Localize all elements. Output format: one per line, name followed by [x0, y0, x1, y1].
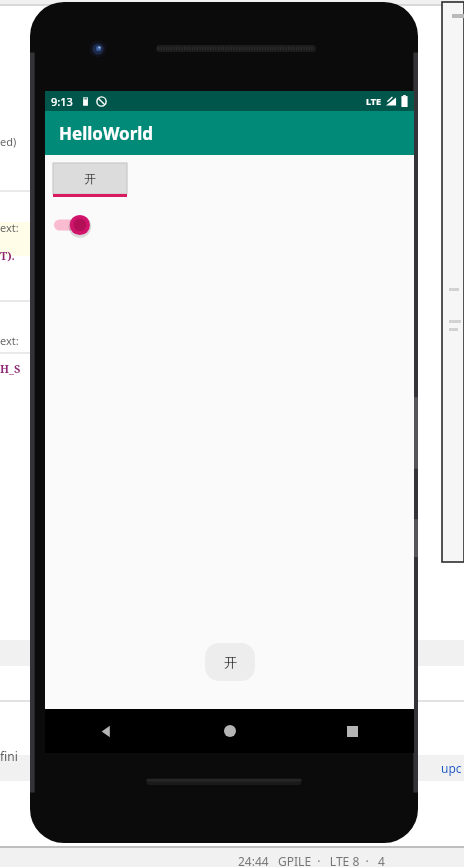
- staticText: fini: [0, 748, 18, 764]
- staticText: H_S: [0, 361, 21, 376]
- staticText: 开: [84, 171, 96, 186]
- staticText: HelloWorld: [59, 122, 154, 145]
- staticText: ed): [0, 134, 17, 149]
- button[interactable]: 开: [205, 643, 255, 681]
- staticText: LTE: [366, 95, 382, 107]
- staticText: ext:: [0, 220, 19, 235]
- staticText: upc: [441, 760, 462, 776]
- staticText: 9:13: [51, 94, 73, 109]
- staticText: T).: [0, 248, 15, 263]
- staticText: 24:44 GPILE · LTE 8 · 4: [238, 853, 385, 867]
- staticText: ext:: [0, 333, 19, 348]
- button[interactable]: Toggle switch: [53, 211, 99, 239]
- button[interactable]: Home: [168, 709, 291, 753]
- button[interactable]: Recent apps: [291, 709, 414, 753]
- button[interactable]: Back: [45, 709, 168, 753]
- staticText: 开: [224, 654, 237, 670]
- button[interactable]: 开: [53, 163, 127, 197]
